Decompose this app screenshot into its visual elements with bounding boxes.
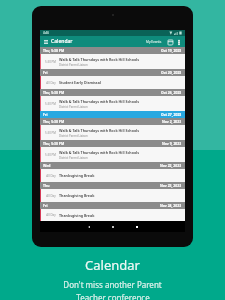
staticText: Nov 24, 2023	[160, 203, 182, 208]
staticText: All Day	[46, 174, 56, 178]
button[interactable]: 5:30 PM	[40, 96, 185, 111]
button[interactable]: 5:30 PM	[40, 54, 185, 69]
staticText: Thu	[43, 183, 50, 188]
button[interactable]: Jump to today	[166, 38, 174, 46]
staticText: Nov 22, 2023	[160, 163, 182, 168]
staticText: Thanksgiving Break	[59, 213, 95, 218]
button[interactable]: All Day	[40, 169, 185, 182]
staticText: Walk & Talk Thursdays with Rock Hill Sch…	[59, 99, 139, 104]
staticText: Calendar	[51, 38, 73, 45]
button[interactable]: Thu, 5:30 PM	[40, 140, 185, 147]
button[interactable]: Open navigation drawer	[42, 38, 50, 46]
staticText: 5:30 PM	[45, 131, 56, 135]
button[interactable]: More options	[175, 38, 183, 46]
staticText: 5:30 PM	[45, 153, 56, 157]
staticText: Fri	[43, 70, 48, 75]
button[interactable]: Back	[84, 222, 93, 231]
staticText: Walk & Talk Thursdays with Rock Hill Sch…	[59, 150, 139, 155]
staticText: Oct 20, 2023	[161, 70, 182, 75]
staticText: District Parent Liaison	[59, 156, 88, 160]
button[interactable]: Thu, 5:30 PM	[40, 118, 185, 125]
staticText: Thu, 5:30 PM	[43, 141, 65, 146]
button[interactable]: All Day	[40, 209, 185, 221]
button[interactable]: Fri	[40, 69, 185, 76]
button[interactable]: All Day	[40, 189, 185, 202]
button[interactable]: Recent apps	[132, 222, 141, 231]
staticText: Fri	[43, 112, 48, 117]
staticText: Nov 23, 2023	[160, 183, 182, 188]
staticText: Thu, 5:30 PM	[43, 90, 65, 95]
staticText: Calendar	[85, 256, 140, 274]
button[interactable]: Home	[108, 222, 117, 231]
button[interactable]: Thu, 5:30 PM	[40, 47, 185, 54]
button[interactable]: Fri	[40, 111, 185, 118]
staticText: 4:46	[43, 31, 49, 35]
staticText: Nov 9, 2023	[162, 141, 182, 146]
staticText: All Day	[46, 213, 56, 217]
staticText: Thu, 5:30 PM	[43, 119, 65, 124]
staticText: District Parent Liaison	[59, 63, 88, 67]
staticText: Student Early Dismissal	[59, 80, 101, 85]
staticText: 5:30 PM	[45, 102, 56, 106]
staticText: Oct 26, 2023	[161, 90, 182, 95]
staticText: Oct 27, 2023	[161, 112, 182, 117]
staticText: 5:30 PM	[45, 60, 56, 64]
button[interactable]: Thu	[40, 182, 185, 189]
staticText: Oct 19, 2023	[161, 48, 182, 53]
button[interactable]: My Events	[144, 39, 164, 45]
staticText: Don't miss another Parent	[63, 279, 162, 290]
staticText: Thanksgiving Break	[59, 173, 95, 178]
staticText: My Events	[146, 40, 162, 44]
button[interactable]: 5:30 PM	[40, 125, 185, 140]
button[interactable]: All Day	[40, 76, 185, 89]
button[interactable]: Fri	[40, 202, 185, 209]
staticText: Thanksgiving Break	[59, 193, 95, 198]
staticText: Fri	[43, 203, 48, 208]
staticText: Thu, 5:30 PM	[43, 48, 65, 53]
staticText: All Day	[46, 81, 56, 85]
staticText: Nov 2, 2023	[162, 119, 182, 124]
staticText: Walk & Talk Thursdays with Rock Hill Sch…	[59, 57, 139, 62]
staticText: District Parent Liaison	[59, 134, 88, 138]
staticText: All Day	[46, 194, 56, 198]
button[interactable]: 5:30 PM	[40, 147, 185, 162]
staticText: Wed	[43, 163, 51, 168]
staticText: Teacher conference	[76, 292, 150, 300]
staticText: Walk & Talk Thursdays with Rock Hill Sch…	[59, 128, 139, 133]
button[interactable]: Thu, 5:30 PM	[40, 89, 185, 96]
button[interactable]: Wed	[40, 162, 185, 169]
staticText: District Parent Liaison	[59, 105, 88, 109]
